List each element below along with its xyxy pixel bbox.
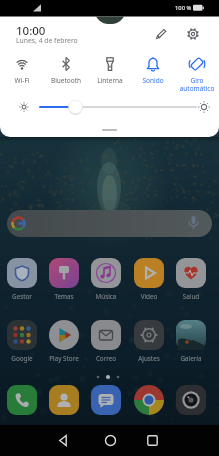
button[interactable] <box>7 385 37 415</box>
staticText: Lunes, 4 de febrero <box>16 36 78 45</box>
button[interactable] <box>183 24 203 44</box>
button[interactable] <box>49 320 79 350</box>
button[interactable] <box>134 258 164 288</box>
button[interactable]: Bluetooth <box>46 50 86 95</box>
button[interactable] <box>134 385 164 415</box>
staticText: Google <box>1 354 43 363</box>
staticText: Play Store <box>43 354 85 363</box>
button[interactable]: Wi-Fi <box>2 50 42 95</box>
button[interactable] <box>91 385 121 415</box>
button[interactable]: Giro automático <box>177 50 217 95</box>
staticText: Gestor <box>1 292 43 301</box>
button[interactable] <box>91 258 121 288</box>
staticText: Giro automático <box>177 76 217 93</box>
button[interactable] <box>49 258 79 288</box>
button[interactable] <box>49 385 79 415</box>
button[interactable] <box>7 320 37 350</box>
button[interactable] <box>176 385 206 415</box>
staticText: Galería <box>170 354 212 363</box>
button[interactable] <box>134 320 164 350</box>
staticText: 10:00 <box>16 23 46 39</box>
staticText: Salud <box>170 292 212 301</box>
button[interactable] <box>7 258 37 288</box>
button[interactable] <box>176 320 206 350</box>
button[interactable] <box>176 258 206 288</box>
staticText: Video <box>128 292 170 301</box>
staticText: Wi-Fi <box>2 76 42 85</box>
staticText: 100 % <box>175 4 192 12</box>
button[interactable] <box>92 425 128 456</box>
staticText: Sonido <box>133 76 173 85</box>
button[interactable]: Sonido <box>133 50 173 95</box>
staticText: Música <box>85 292 127 301</box>
button[interactable] <box>7 210 212 237</box>
button[interactable] <box>91 320 121 350</box>
staticText: Correo <box>85 354 127 363</box>
button[interactable]: Linterna <box>90 50 130 95</box>
button[interactable] <box>134 425 170 456</box>
button[interactable] <box>45 425 81 456</box>
staticText: Ajustes <box>128 354 170 363</box>
staticText: Bluetooth <box>46 76 86 85</box>
button[interactable] <box>150 24 170 44</box>
staticText: Linterna <box>90 76 130 85</box>
staticText: Temas <box>43 292 85 301</box>
